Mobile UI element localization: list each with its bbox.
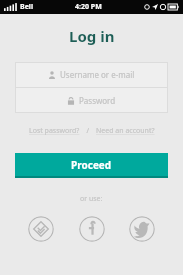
button[interactable]: Password <box>15 88 168 113</box>
button[interactable]: Lost password? <box>28 123 81 139</box>
staticText: Lost password? <box>29 126 80 136</box>
staticText: Log in <box>69 26 115 46</box>
staticText: Proceed <box>71 158 112 172</box>
button[interactable]: Sign in with Facebook <box>79 216 105 242</box>
staticText: Username or e-mail <box>60 69 135 80</box>
staticText: Need an account? <box>96 126 155 136</box>
staticText: Bell <box>20 2 34 12</box>
button[interactable]: Need an account? <box>95 123 156 139</box>
staticText: 4:20 PM <box>75 2 102 12</box>
button[interactable]: Username or e-mail <box>15 62 168 87</box>
staticText: or use: <box>80 194 103 204</box>
staticText: / <box>81 126 95 136</box>
button[interactable]: Sign in with Evernote <box>28 216 54 242</box>
button[interactable]: Sign in with Twitter <box>129 216 155 242</box>
button[interactable]: Proceed <box>15 153 168 178</box>
staticText: Password <box>79 95 116 106</box>
